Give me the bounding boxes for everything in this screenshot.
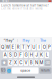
- button[interactable]: A: [3, 52, 7, 58]
- staticText: V: [24, 60, 27, 65]
- button[interactable]: F: [19, 52, 23, 58]
- staticText: T: [22, 45, 25, 50]
- staticText: I: [38, 45, 39, 50]
- staticText: “Hey”: [3, 38, 14, 43]
- button[interactable]: M: [39, 60, 44, 66]
- staticText: P: [48, 45, 51, 50]
- button[interactable]: T: [21, 44, 25, 50]
- button[interactable]: N: [34, 60, 38, 66]
- button[interactable]: G: [24, 52, 28, 58]
- staticText: space: [20, 69, 30, 72]
- staticText: R: [17, 45, 20, 50]
- staticText: S: [9, 52, 12, 58]
- button[interactable]: ⬆: [1, 60, 7, 66]
- button[interactable]: Z: [8, 60, 12, 66]
- button[interactable]: H: [29, 52, 33, 58]
- staticText: A: [4, 52, 7, 58]
- button[interactable]: ⌫: [45, 60, 51, 66]
- button[interactable]: J: [34, 52, 38, 58]
- staticText: K: [40, 52, 43, 58]
- staticText: Z: [9, 60, 12, 65]
- button[interactable]: “Hey”: [1, 37, 17, 43]
- button[interactable]: The: [35, 37, 51, 43]
- button[interactable]: C: [19, 60, 23, 66]
- staticText: X: [14, 60, 17, 65]
- button[interactable]: B: [29, 60, 33, 66]
- button[interactable]: 🌐: [7, 67, 11, 74]
- staticText: U: [32, 45, 35, 50]
- staticText: 9:41: [2, 0, 8, 3]
- staticText: ⌫: [45, 60, 50, 65]
- button[interactable]: return: [39, 67, 51, 74]
- staticText: C: [19, 60, 22, 65]
- button[interactable]: P: [47, 44, 51, 50]
- button[interactable]: Q: [0, 44, 5, 50]
- button[interactable]: 123: [0, 67, 6, 74]
- staticText: G: [24, 52, 27, 58]
- button[interactable]: Hey: [18, 37, 34, 43]
- staticText: J: [35, 52, 37, 58]
- button[interactable]: W: [6, 44, 10, 50]
- staticText: ⬆: [2, 60, 6, 65]
- button[interactable]: O: [42, 44, 46, 50]
- staticText: Hey: [22, 38, 29, 43]
- button[interactable]: space: [12, 67, 38, 74]
- button[interactable]: D: [13, 52, 18, 58]
- staticText: Lunch tomorrow at half twelve?: [1, 4, 48, 7]
- button[interactable]: V: [24, 60, 28, 66]
- staticText: B: [30, 60, 33, 65]
- staticText: W: [6, 45, 10, 50]
- button[interactable]: U: [32, 44, 36, 50]
- staticText: L: [46, 52, 48, 58]
- staticText: Y: [27, 45, 30, 50]
- button[interactable]: Y: [26, 44, 31, 50]
- button[interactable]: S: [8, 52, 12, 58]
- staticText: M: [40, 60, 44, 65]
- button[interactable]: L: [45, 52, 49, 58]
- staticText: O: [43, 45, 46, 50]
- button[interactable]: E: [11, 44, 15, 50]
- staticText: 🌐: [7, 68, 11, 73]
- staticText: 123: [1, 69, 6, 72]
- button[interactable]: K: [39, 52, 44, 58]
- staticText: H: [30, 52, 33, 58]
- button[interactable]: X: [13, 60, 18, 66]
- staticText: E: [11, 45, 14, 50]
- staticText: F: [19, 52, 22, 58]
- button[interactable]: I: [37, 44, 41, 50]
- button[interactable]: R: [16, 44, 20, 50]
- staticText: Let me know if that still works: [1, 7, 42, 10]
- staticText: D: [14, 52, 17, 58]
- staticText: N: [35, 60, 38, 65]
- staticText: return: [41, 69, 50, 72]
- staticText: Q: [1, 45, 4, 50]
- staticText: The: [40, 38, 46, 43]
